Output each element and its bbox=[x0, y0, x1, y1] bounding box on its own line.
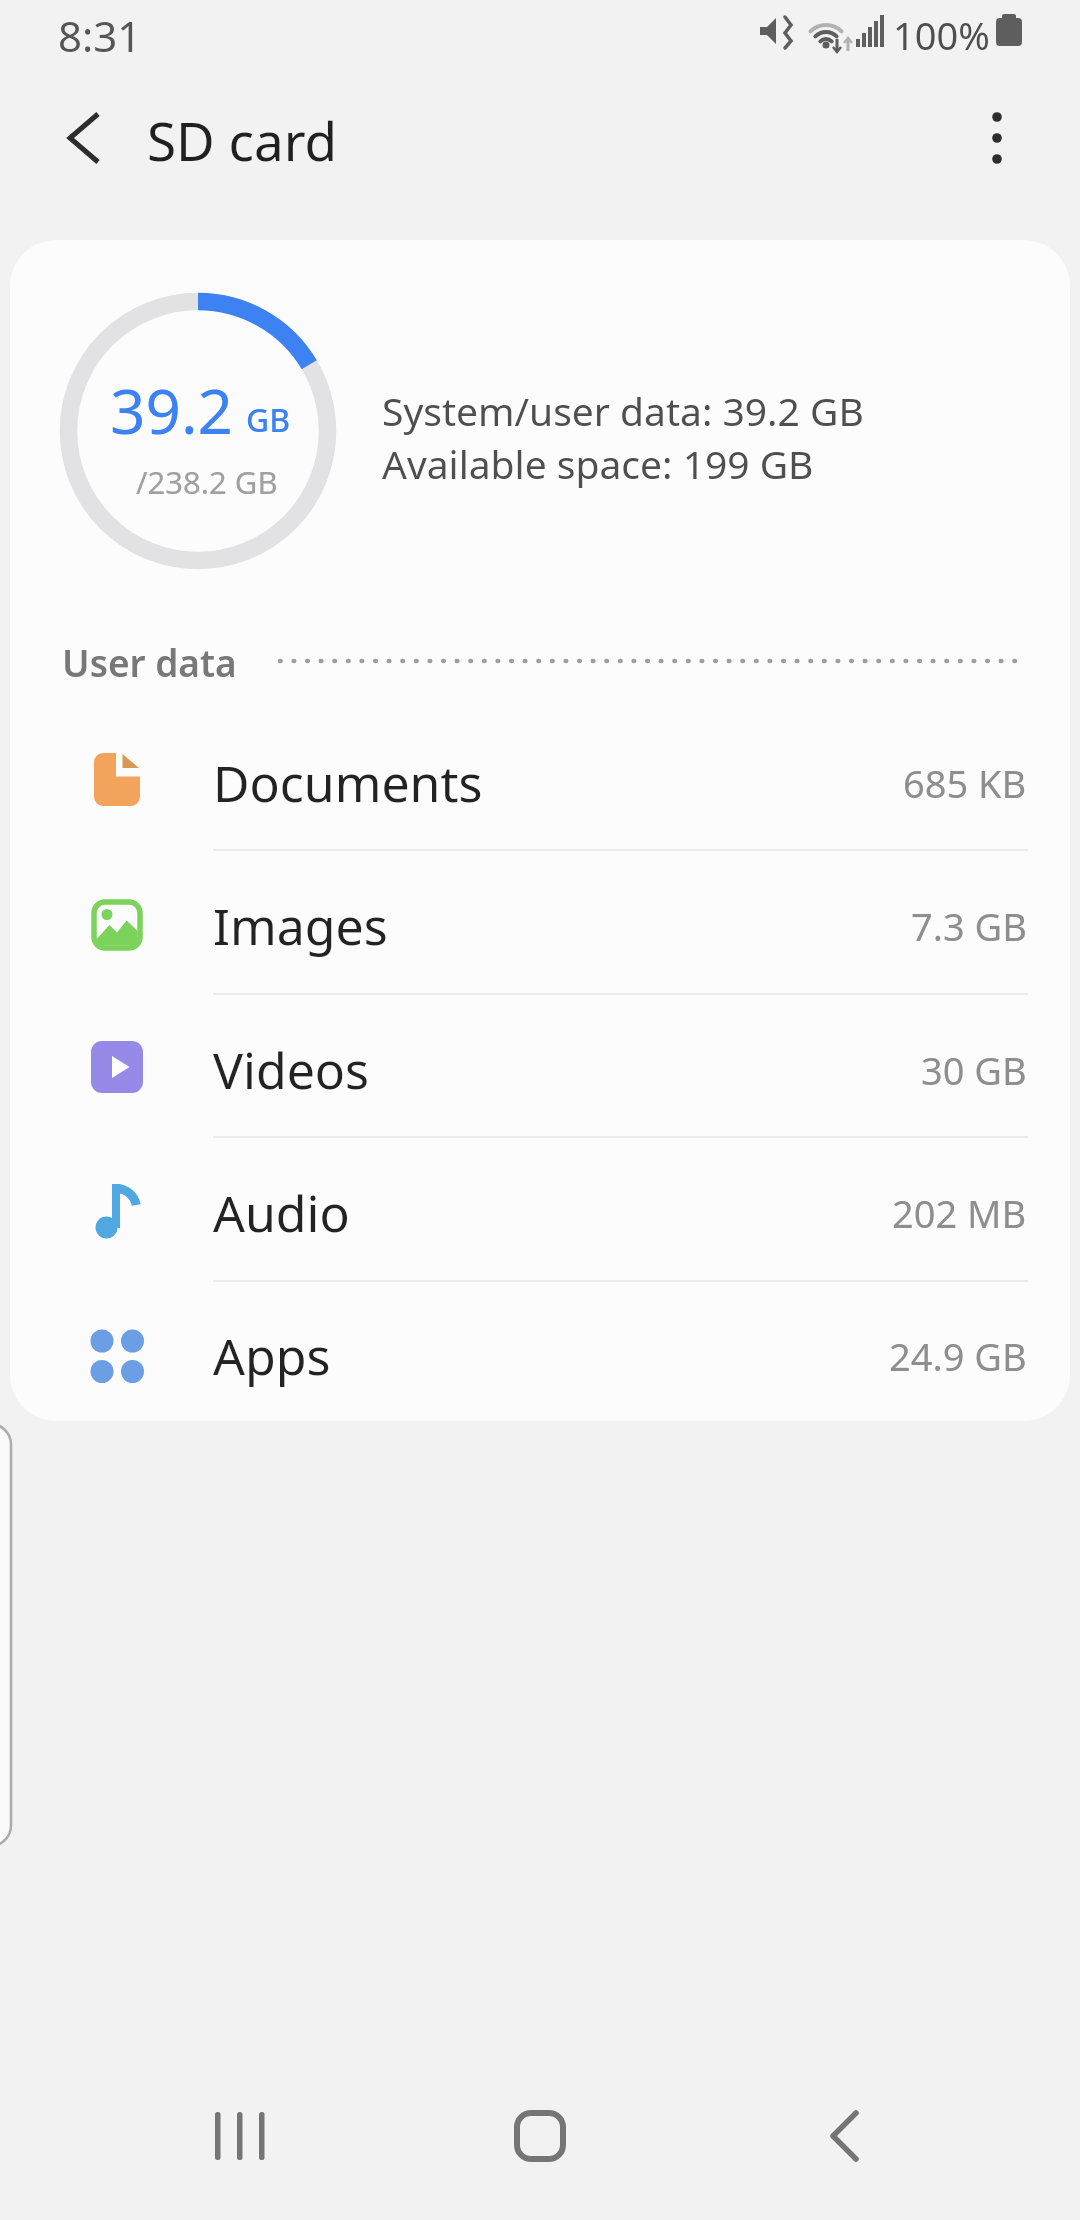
button[interactable] bbox=[160, 2081, 320, 2191]
staticText: Apps bbox=[213, 1322, 331, 1390]
staticText: 685 KB bbox=[903, 757, 1027, 809]
staticText: GB bbox=[246, 398, 291, 442]
button[interactable] bbox=[952, 93, 1042, 183]
button[interactable] bbox=[460, 2081, 620, 2191]
staticText: 8:31 bbox=[58, 7, 142, 64]
button[interactable] bbox=[30, 93, 140, 183]
staticText: 7.3 GB bbox=[911, 900, 1027, 952]
staticText: /238.2 GB bbox=[136, 461, 278, 503]
staticText: Videos bbox=[213, 1036, 370, 1104]
staticText: Available space: 199 GB bbox=[382, 437, 814, 490]
staticText: Images bbox=[213, 892, 388, 960]
staticText: 30 GB bbox=[921, 1044, 1027, 1096]
button[interactable]: Audio bbox=[10, 1141, 1070, 1284]
button[interactable] bbox=[760, 2081, 920, 2191]
button[interactable]: Videos bbox=[10, 998, 1070, 1141]
staticText: 202 MB bbox=[892, 1187, 1027, 1239]
button[interactable]: Apps bbox=[10, 1284, 1070, 1427]
staticText: Documents bbox=[213, 749, 483, 817]
staticText: 100% bbox=[893, 9, 990, 61]
button[interactable]: Images bbox=[10, 854, 1070, 997]
button[interactable]: Documents bbox=[10, 711, 1070, 854]
staticText: User data bbox=[62, 637, 237, 687]
staticText: 39.2 bbox=[110, 368, 234, 452]
staticText: System/user data: 39.2 GB bbox=[382, 384, 864, 437]
staticText: 24.9 GB bbox=[889, 1330, 1027, 1382]
staticText: Audio bbox=[213, 1179, 350, 1247]
staticText: SD card bbox=[147, 104, 338, 176]
